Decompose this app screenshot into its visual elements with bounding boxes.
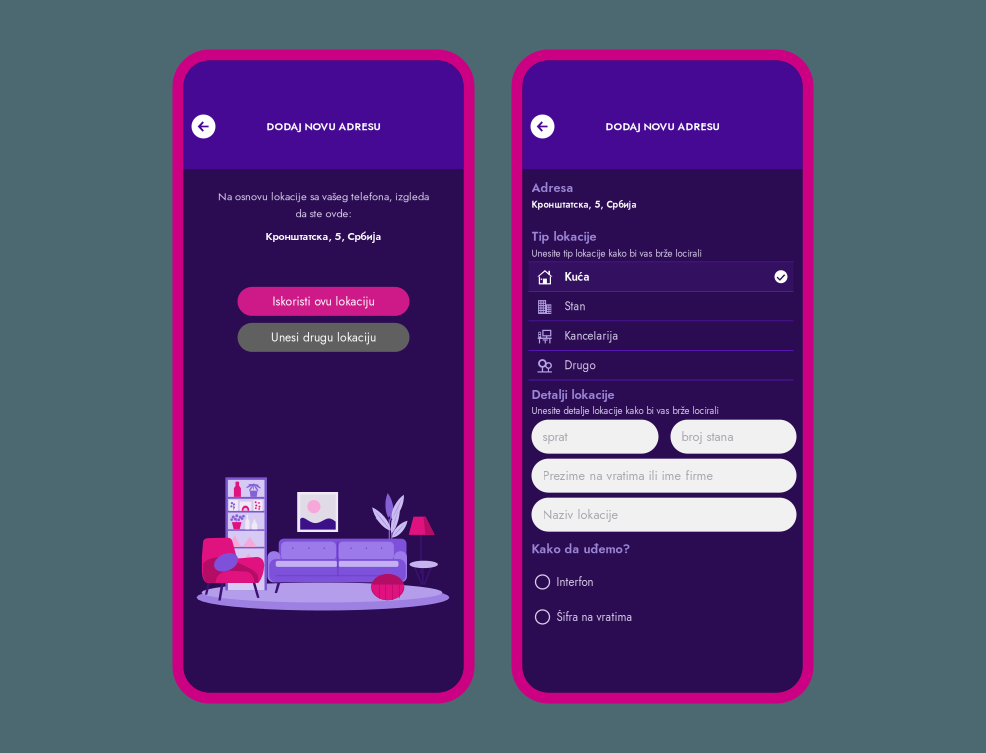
staticText: Na osnovu lokacije sa vašeg telefona, iz… xyxy=(218,188,429,204)
staticText: Kancelarija xyxy=(564,327,618,344)
staticText: Unesite tip lokacije kako bi vas brže lo… xyxy=(531,247,701,260)
staticText: Drugo xyxy=(564,357,595,373)
staticText: Naziv lokacije xyxy=(542,505,618,524)
button[interactable]: Back xyxy=(191,114,215,138)
staticText: Prezime na vratima ili ime firme xyxy=(542,466,713,485)
button[interactable]: Interfon xyxy=(535,573,802,591)
staticText: Unesi drugu lokaciju xyxy=(271,329,376,346)
button[interactable]: Naziv lokacije xyxy=(531,498,796,532)
button[interactable]: Iskoristi ovu lokaciju xyxy=(237,287,409,316)
staticText: Interfon xyxy=(556,574,593,590)
staticText: Adresa xyxy=(531,178,573,197)
button[interactable]: Stan xyxy=(528,292,793,320)
button[interactable]: Back xyxy=(530,114,554,138)
staticText: Detalji lokacije xyxy=(531,385,614,404)
staticText: DODAJ NOVU ADRESU xyxy=(266,119,380,134)
staticText: broj stana xyxy=(681,427,733,446)
button[interactable]: sprat xyxy=(531,420,658,454)
button[interactable]: Unesi drugu lokaciju xyxy=(237,323,409,352)
staticText: Iskoristi ovu lokaciju xyxy=(272,293,374,310)
button[interactable]: Kancelarija xyxy=(528,321,793,350)
button[interactable]: Kuća xyxy=(528,262,793,291)
button[interactable]: broj stana xyxy=(670,420,796,454)
staticText: DODAJ NOVU ADRESU xyxy=(605,119,719,134)
staticText: sprat xyxy=(542,427,567,446)
button[interactable]: Prezime na vratima ili ime firme xyxy=(531,459,796,493)
button[interactable]: Drugo xyxy=(528,351,793,379)
staticText: Stan xyxy=(564,298,585,314)
staticText: Unesite detalje lokacije kako bi vas brž… xyxy=(531,404,718,418)
staticText: Tip lokacije xyxy=(531,227,596,246)
staticText: Kako da uđemo? xyxy=(531,540,630,558)
staticText: Kuća xyxy=(564,268,589,285)
staticText: Кронштатска, 5, Србија xyxy=(265,228,381,244)
staticText: Кронштатска, 5, Србија xyxy=(531,198,636,211)
staticText: da ste ovde: xyxy=(295,205,351,221)
staticText: Šifra na vratima xyxy=(556,609,632,625)
button[interactable]: Šifra na vratima xyxy=(535,608,802,626)
